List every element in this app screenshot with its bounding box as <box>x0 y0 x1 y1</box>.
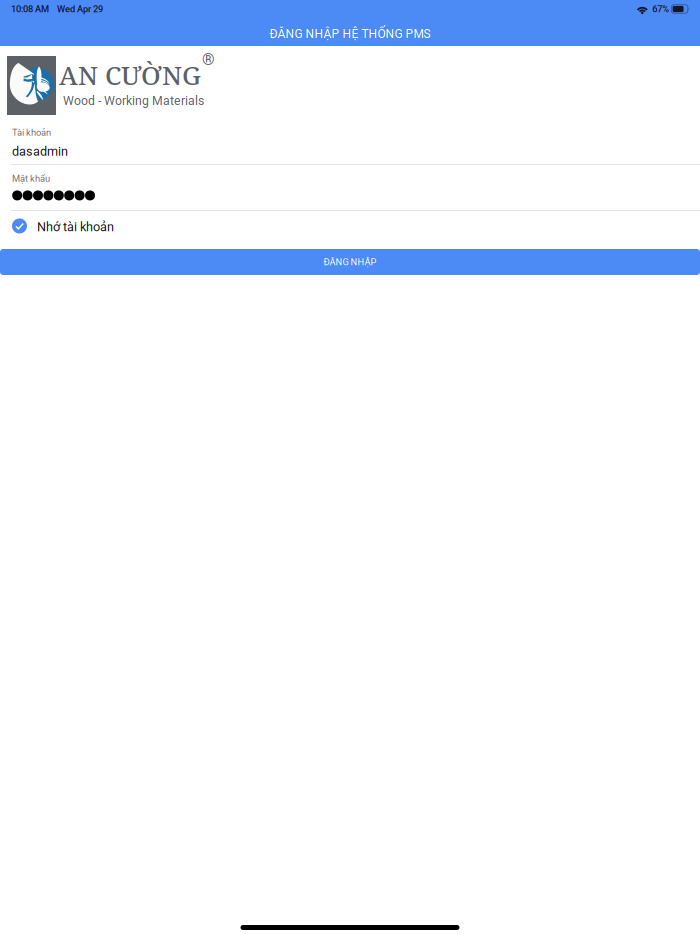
button[interactable]: ĐĂNG NHẬP <box>0 249 700 275</box>
staticText: ĐĂNG NHẬP <box>323 256 376 267</box>
staticText: ® <box>202 50 215 69</box>
staticText: ĐĂNG NHẬP HỆ THỐNG PMS <box>269 27 430 41</box>
staticText: AN CƯỜNG <box>59 57 201 92</box>
staticText: Wed Apr 29 <box>57 3 103 14</box>
button[interactable]: Nhớ tài khoản <box>0 211 700 249</box>
staticText: Tài khoản <box>12 127 51 138</box>
staticText: Nhớ tài khoản <box>37 220 114 234</box>
staticText: Mật khẩu <box>12 173 50 184</box>
staticText: Wood - Working Materials <box>63 93 204 108</box>
staticText: 67% <box>652 3 669 14</box>
staticText: dasadmin <box>12 144 68 159</box>
staticText: 10:08 AM <box>11 3 49 14</box>
